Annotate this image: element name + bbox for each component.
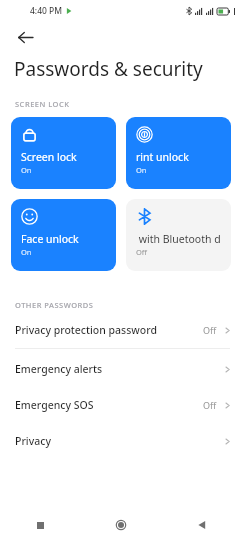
button[interactable]: Emergency SOS <box>0 387 242 423</box>
staticText: Emergency SOS <box>15 398 203 412</box>
staticText: Privacy protection password <box>15 323 203 337</box>
staticText: Off <box>203 324 217 336</box>
button[interactable]: Recent apps <box>27 512 53 538</box>
staticText: Off <box>136 247 148 257</box>
staticText: Off <box>203 399 217 411</box>
staticText: Passwords & security <box>14 56 203 82</box>
button[interactable]: rint unlock <box>126 117 231 189</box>
staticText: OTHER PASSWORDS <box>15 300 94 310</box>
staticText: with Bluetooth d <box>136 232 221 246</box>
button[interactable]: Screen lock <box>11 117 116 189</box>
button[interactable]: with Bluetooth d <box>126 199 231 271</box>
staticText: On <box>136 165 147 175</box>
staticText: 4:40 PM <box>30 5 63 17</box>
button[interactable]: Privacy protection password <box>0 312 242 348</box>
staticText: Privacy <box>15 434 223 448</box>
button[interactable]: Privacy <box>0 423 242 459</box>
staticText: On <box>21 247 32 257</box>
staticText: Emergency alerts <box>15 362 223 376</box>
button[interactable]: Face unlock <box>11 199 116 271</box>
button[interactable]: Back <box>10 22 40 52</box>
button[interactable]: Back <box>189 512 215 538</box>
staticText: rint unlock <box>136 150 189 164</box>
staticText: Screen lock <box>21 150 77 164</box>
button[interactable]: Emergency alerts <box>0 351 242 387</box>
staticText: On <box>21 165 32 175</box>
button[interactable]: Home <box>108 512 134 538</box>
staticText: SCREEN LOCK <box>15 99 70 109</box>
staticText: Face unlock <box>21 232 79 246</box>
